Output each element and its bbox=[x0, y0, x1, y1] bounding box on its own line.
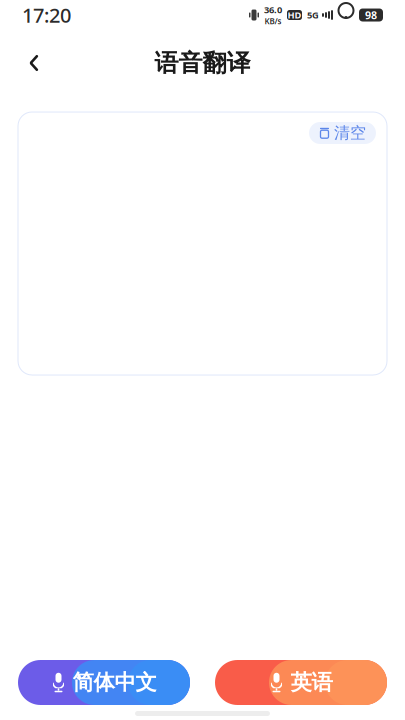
button[interactable]: 简体中文 bbox=[18, 660, 190, 705]
staticText: 简体中文 bbox=[72, 669, 156, 696]
button[interactable]: 清空 bbox=[309, 122, 376, 144]
staticText: 清空 bbox=[334, 123, 366, 143]
staticText: KB/s bbox=[264, 16, 281, 26]
staticText: 98 bbox=[365, 8, 377, 22]
staticText: 语音翻译 bbox=[154, 48, 250, 78]
button[interactable]: 返回 bbox=[12, 42, 56, 84]
staticText: HD bbox=[287, 9, 301, 21]
staticText: 5G bbox=[307, 9, 319, 21]
button[interactable]: 英语 bbox=[215, 660, 387, 705]
staticText: 17:20 bbox=[22, 2, 71, 28]
staticText: 36.0 bbox=[264, 3, 282, 16]
staticText: 英语 bbox=[290, 669, 332, 696]
